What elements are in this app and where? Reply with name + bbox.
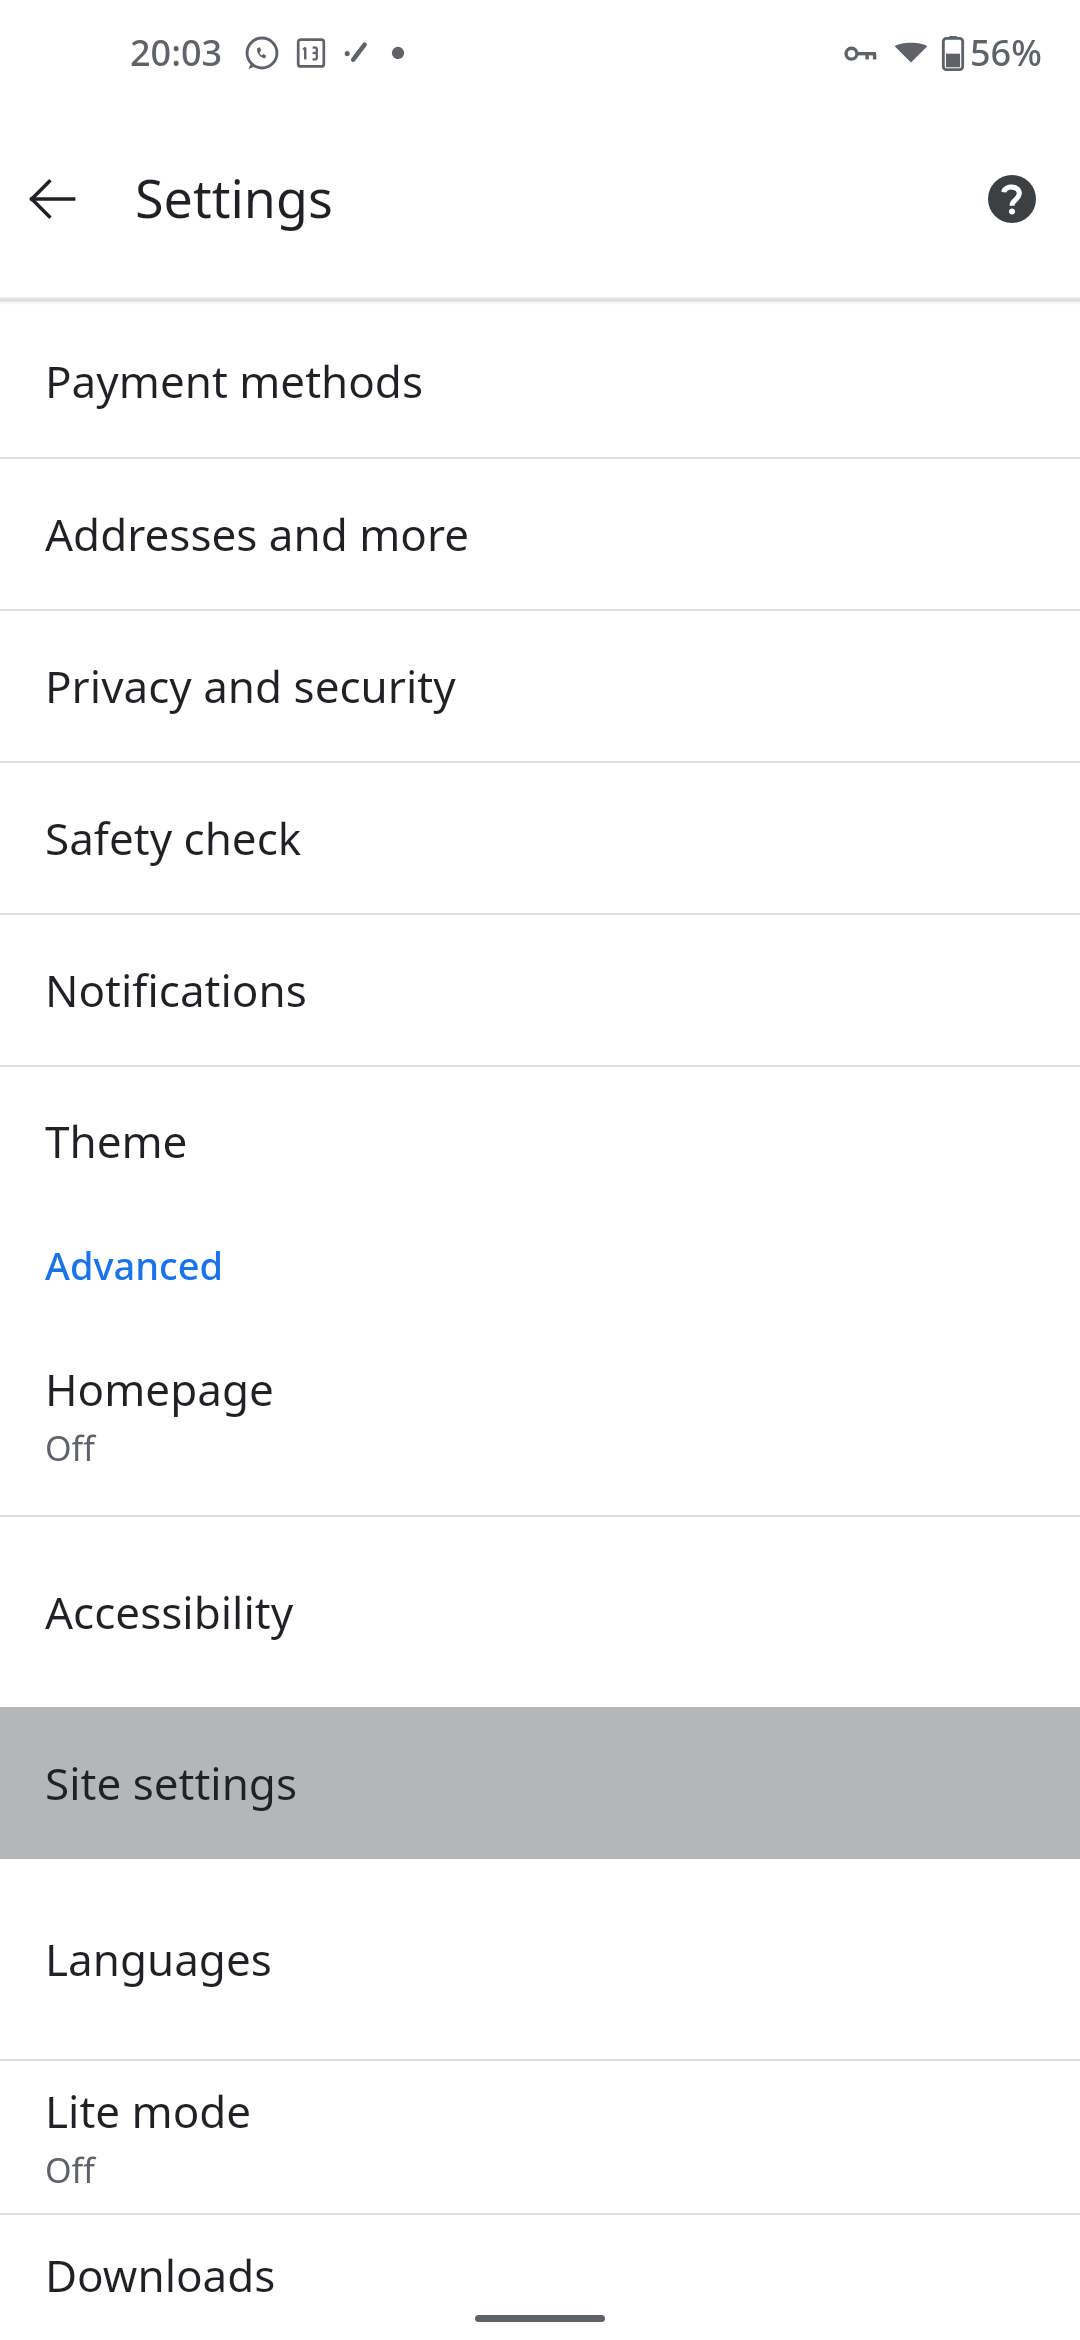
button[interactable]: Advanced <box>0 1215 1080 1315</box>
staticText: Payment methods <box>45 351 424 411</box>
button[interactable]: Homepage <box>0 1315 1080 1515</box>
staticText: Site settings <box>45 1753 297 1813</box>
staticText: Privacy and security <box>45 656 456 716</box>
staticText: Off <box>45 2147 95 2193</box>
button[interactable]: Safety check <box>0 763 1080 913</box>
staticText: Homepage <box>45 1359 274 1419</box>
staticText: Languages <box>45 1929 272 1989</box>
staticText: 20:03 <box>130 28 223 77</box>
staticText: Lite mode <box>45 2081 252 2141</box>
button[interactable]: Lite mode <box>0 2061 1080 2213</box>
button[interactable]: Help <box>970 157 1054 241</box>
staticText: Settings <box>135 162 333 233</box>
button[interactable]: Site settings <box>0 1707 1080 1859</box>
staticText: Addresses and more <box>45 504 470 564</box>
staticText: Theme <box>45 1111 188 1171</box>
staticText: Notifications <box>45 960 307 1020</box>
button[interactable]: Addresses and more <box>0 459 1080 609</box>
button[interactable]: Payment methods <box>0 305 1080 457</box>
button[interactable]: Accessibility <box>0 1517 1080 1707</box>
staticText: Safety check <box>45 808 302 868</box>
button[interactable]: Privacy and security <box>0 611 1080 761</box>
staticText: Downloads <box>45 2245 276 2305</box>
button[interactable]: Languages <box>0 1859 1080 2059</box>
staticText: Off <box>45 1425 95 1471</box>
button[interactable]: Theme <box>0 1067 1080 1215</box>
staticText: Advanced <box>45 1239 224 1291</box>
button[interactable]: Downloads <box>0 2215 1080 2305</box>
staticText: Accessibility <box>45 1582 294 1642</box>
button[interactable]: Notifications <box>0 915 1080 1065</box>
staticText: 56% <box>970 28 1042 77</box>
button[interactable]: Back <box>10 157 94 241</box>
